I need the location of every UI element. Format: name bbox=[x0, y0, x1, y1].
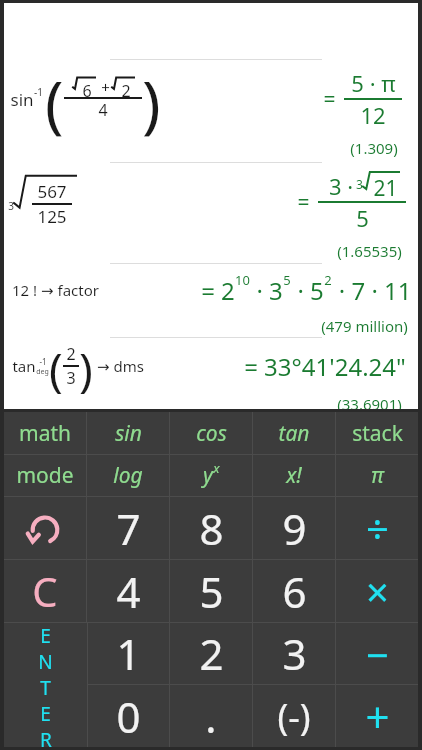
staticText: ) bbox=[142, 60, 161, 138]
button[interactable]: 2 bbox=[170, 623, 252, 684]
staticText: 567 bbox=[37, 180, 67, 203]
button[interactable]: . bbox=[170, 685, 252, 747]
staticText: 2 bbox=[66, 343, 76, 365]
staticText: 5 bbox=[199, 563, 224, 620]
staticText: -1 bbox=[39, 356, 47, 367]
staticText: E bbox=[40, 623, 51, 649]
staticText: deg bbox=[36, 367, 49, 377]
staticText: = bbox=[297, 188, 310, 217]
button[interactable]: 1 bbox=[88, 623, 169, 684]
staticText: 2 bbox=[199, 625, 224, 682]
staticText: 12 ! → factor bbox=[12, 280, 99, 300]
staticText: ) bbox=[79, 338, 93, 394]
button[interactable]: sin bbox=[87, 412, 169, 454]
staticText: 9 bbox=[282, 500, 307, 557]
staticText: (1.65535) bbox=[337, 241, 402, 261]
staticText: 4 bbox=[98, 99, 108, 121]
button[interactable]: mode bbox=[4, 455, 86, 496]
staticText: N bbox=[38, 649, 53, 675]
staticText: 0 bbox=[116, 688, 141, 745]
staticText: ( bbox=[45, 60, 64, 138]
staticText: − bbox=[366, 627, 389, 681]
button[interactable]: 8 bbox=[170, 497, 252, 559]
staticText: 4 bbox=[116, 563, 141, 620]
staticText: 3 · bbox=[326, 171, 356, 201]
staticText: E bbox=[40, 701, 51, 727]
button[interactable]: x! bbox=[253, 455, 335, 496]
staticText: 6 bbox=[282, 563, 307, 620]
button[interactable]: 6 bbox=[253, 560, 335, 622]
staticText: 21 bbox=[373, 174, 398, 201]
staticText: · 3 bbox=[250, 274, 283, 307]
staticText: (479 million) bbox=[321, 316, 408, 336]
button[interactable]: 5 bbox=[170, 560, 252, 622]
staticText: 7 bbox=[116, 500, 141, 557]
button[interactable]: y bbox=[170, 455, 252, 496]
staticText: sin bbox=[115, 419, 142, 448]
staticText: 12 bbox=[360, 100, 386, 130]
staticText: x bbox=[213, 459, 220, 477]
staticText: 6 bbox=[82, 80, 92, 97]
button[interactable]: log bbox=[87, 455, 169, 496]
staticText: tan bbox=[278, 419, 310, 448]
staticText: (1.309) bbox=[350, 138, 398, 158]
staticText: 2 bbox=[324, 271, 332, 289]
staticText: · 7 · 11 bbox=[332, 274, 412, 307]
staticText: T bbox=[40, 675, 51, 701]
staticText: → dms bbox=[93, 356, 144, 376]
staticText: R bbox=[40, 727, 52, 747]
button[interactable]: cos bbox=[170, 412, 252, 454]
staticText: . bbox=[205, 688, 217, 745]
staticText: sin bbox=[10, 88, 34, 111]
button[interactable]: − bbox=[336, 623, 418, 684]
staticText: ÷ bbox=[366, 501, 389, 555]
staticText: 10 bbox=[235, 271, 250, 289]
staticText: π bbox=[371, 461, 384, 490]
button[interactable]: 7 bbox=[87, 497, 169, 559]
staticText: C bbox=[32, 564, 58, 618]
button[interactable]: stack bbox=[336, 412, 418, 454]
staticText: + bbox=[365, 688, 390, 745]
staticText: × bbox=[366, 564, 389, 618]
staticText: 5 bbox=[283, 271, 291, 289]
button[interactable]: 3 bbox=[253, 623, 335, 684]
staticText: = bbox=[323, 85, 336, 114]
staticText: 5 bbox=[356, 203, 369, 233]
staticText: y bbox=[203, 461, 213, 490]
staticText: cos bbox=[196, 419, 227, 448]
button[interactable]: 0 bbox=[88, 685, 169, 747]
staticText: log bbox=[113, 461, 143, 490]
staticText: x! bbox=[286, 461, 302, 490]
staticText: 3 bbox=[8, 199, 14, 213]
button[interactable]: π bbox=[336, 455, 418, 496]
button[interactable]: ÷ bbox=[336, 497, 418, 559]
button[interactable]: + bbox=[336, 685, 418, 747]
button[interactable]: C bbox=[4, 560, 86, 622]
staticText: math bbox=[19, 419, 71, 448]
staticText: + bbox=[95, 77, 112, 97]
button[interactable]: Undo bbox=[4, 497, 86, 559]
staticText: (33.6901) bbox=[337, 394, 402, 409]
staticText: = 33°41'24.24" bbox=[244, 350, 406, 383]
button[interactable]: × bbox=[336, 560, 418, 622]
button[interactable]: 4 bbox=[87, 560, 169, 622]
staticText: -1 bbox=[34, 85, 43, 99]
staticText: 1 bbox=[116, 625, 141, 682]
staticText: 3 bbox=[356, 176, 363, 192]
staticText: 3 bbox=[66, 367, 76, 389]
staticText: tan bbox=[12, 356, 36, 376]
staticText: ( bbox=[49, 338, 63, 394]
button[interactable]: (-) bbox=[253, 685, 335, 747]
button[interactable]: 9 bbox=[253, 497, 335, 559]
staticText: 2 bbox=[121, 80, 131, 97]
button[interactable]: math bbox=[4, 412, 86, 454]
staticText: stack bbox=[352, 419, 403, 448]
staticText: 8 bbox=[199, 500, 224, 557]
button[interactable]: E bbox=[4, 623, 87, 747]
staticText: mode bbox=[16, 461, 74, 490]
staticText: 5 · π bbox=[351, 68, 396, 98]
staticText: 3 bbox=[282, 625, 307, 682]
button[interactable]: tan bbox=[253, 412, 335, 454]
staticText: = 2 bbox=[201, 274, 235, 307]
staticText: 125 bbox=[37, 205, 67, 228]
